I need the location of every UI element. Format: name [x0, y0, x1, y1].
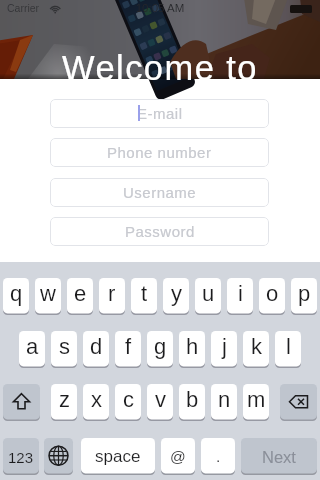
button[interactable]: u	[195, 278, 221, 315]
button[interactable]: Phone number	[50, 138, 269, 167]
button[interactable]: Password	[50, 217, 269, 246]
button[interactable]: .	[201, 438, 235, 475]
button[interactable]: p	[291, 278, 317, 315]
button[interactable]: t	[131, 278, 157, 315]
staticText: Next	[262, 448, 296, 466]
staticText: y	[171, 281, 182, 306]
button[interactable]: f	[115, 331, 141, 368]
staticText: i	[238, 281, 243, 306]
staticText: Password	[125, 223, 195, 240]
staticText: s	[59, 334, 70, 359]
button[interactable]: a	[19, 331, 45, 368]
staticText: g	[154, 334, 167, 359]
staticText: h	[186, 334, 199, 359]
button[interactable]: v	[147, 384, 173, 421]
button[interactable]: q	[3, 278, 29, 315]
button[interactable]: Username	[50, 178, 269, 207]
staticText: Username	[123, 184, 197, 201]
button[interactable]: g	[147, 331, 173, 368]
staticText: t	[141, 281, 148, 306]
button[interactable]: j	[211, 331, 237, 368]
button[interactable]: space	[81, 438, 155, 475]
staticText: a	[26, 334, 39, 359]
staticText: Welcome to	[0, 49, 320, 88]
button[interactable]: n	[211, 384, 237, 421]
staticText: space	[95, 447, 141, 466]
staticText: m	[247, 387, 266, 412]
staticText: u	[202, 281, 215, 306]
button[interactable]: i	[227, 278, 253, 315]
staticText: e	[74, 281, 87, 306]
button[interactable]: x	[83, 384, 109, 421]
button[interactable]: Shift	[3, 384, 40, 421]
button[interactable]: d	[83, 331, 109, 368]
staticText: 10:05 AM	[0, 2, 320, 15]
staticText: f	[125, 334, 132, 359]
staticText: Phone number	[107, 144, 212, 161]
staticText: p	[298, 281, 311, 306]
staticText: r	[108, 281, 116, 306]
button[interactable]: s	[51, 331, 77, 368]
staticText: z	[59, 387, 70, 412]
button[interactable]: Backspace	[280, 384, 317, 421]
button[interactable]: 123	[3, 438, 39, 475]
button[interactable]: b	[179, 384, 205, 421]
button[interactable]: Next	[241, 438, 317, 475]
button[interactable]: z	[51, 384, 77, 421]
button[interactable]: y	[163, 278, 189, 315]
button[interactable]: k	[243, 331, 269, 368]
button[interactable]: m	[243, 384, 269, 421]
button[interactable]: c	[115, 384, 141, 421]
staticText: k	[251, 334, 262, 359]
staticText: j	[222, 334, 227, 359]
staticText: .	[216, 448, 221, 465]
staticText: 123	[8, 449, 34, 466]
staticText: w	[40, 281, 56, 306]
button[interactable]: o	[259, 278, 285, 315]
button[interactable]: e	[67, 278, 93, 315]
staticText: q	[10, 281, 23, 306]
button[interactable]: w	[35, 278, 61, 315]
button[interactable]: l	[275, 331, 301, 368]
button[interactable]: h	[179, 331, 205, 368]
staticText: @	[170, 448, 186, 465]
staticText: c	[123, 387, 134, 412]
staticText: x	[91, 387, 102, 412]
button[interactable]: E-mail	[50, 99, 269, 128]
staticText: Carrier	[7, 2, 40, 14]
staticText: d	[90, 334, 103, 359]
button[interactable]: @	[161, 438, 195, 475]
staticText: E-mail	[137, 105, 183, 122]
staticText: l	[286, 334, 291, 359]
staticText: b	[186, 387, 199, 412]
staticText: n	[218, 387, 231, 412]
button[interactable]: r	[99, 278, 125, 315]
button[interactable]: Change keyboard	[44, 438, 73, 475]
staticText: o	[266, 281, 279, 306]
staticText: v	[155, 387, 166, 412]
